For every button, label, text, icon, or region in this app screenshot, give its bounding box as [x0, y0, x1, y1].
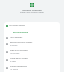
- staticText: 2 apps: [10, 60, 16, 63]
- staticText: Security Checkup: [0, 8, 64, 11]
- staticText: Keep your account safer: [0, 11, 64, 14]
- staticText: Sign-in & recovery: [10, 49, 28, 52]
- staticText: No issues found: [9, 24, 25, 27]
- button[interactable]: No issues found: [4, 22, 60, 29]
- staticText: Up to date: [10, 52, 20, 55]
- button[interactable]: Your devices: [4, 35, 60, 40]
- staticText: 2 events: [10, 44, 18, 47]
- staticText: Third-party access: [10, 57, 28, 60]
- staticText: Recommended: [13, 31, 29, 34]
- staticText: Recent security activity: [10, 41, 33, 44]
- staticText: Saved passwords: [10, 65, 27, 68]
- button[interactable]: Saved passwords: [4, 64, 60, 72]
- staticText: Your devices: [10, 36, 23, 39]
- button[interactable]: Sign-in & recovery: [4, 48, 60, 56]
- button[interactable]: Recent security activity: [4, 40, 60, 48]
- staticText: 12 saved: [10, 68, 18, 71]
- button[interactable]: Third-party access: [4, 56, 60, 64]
